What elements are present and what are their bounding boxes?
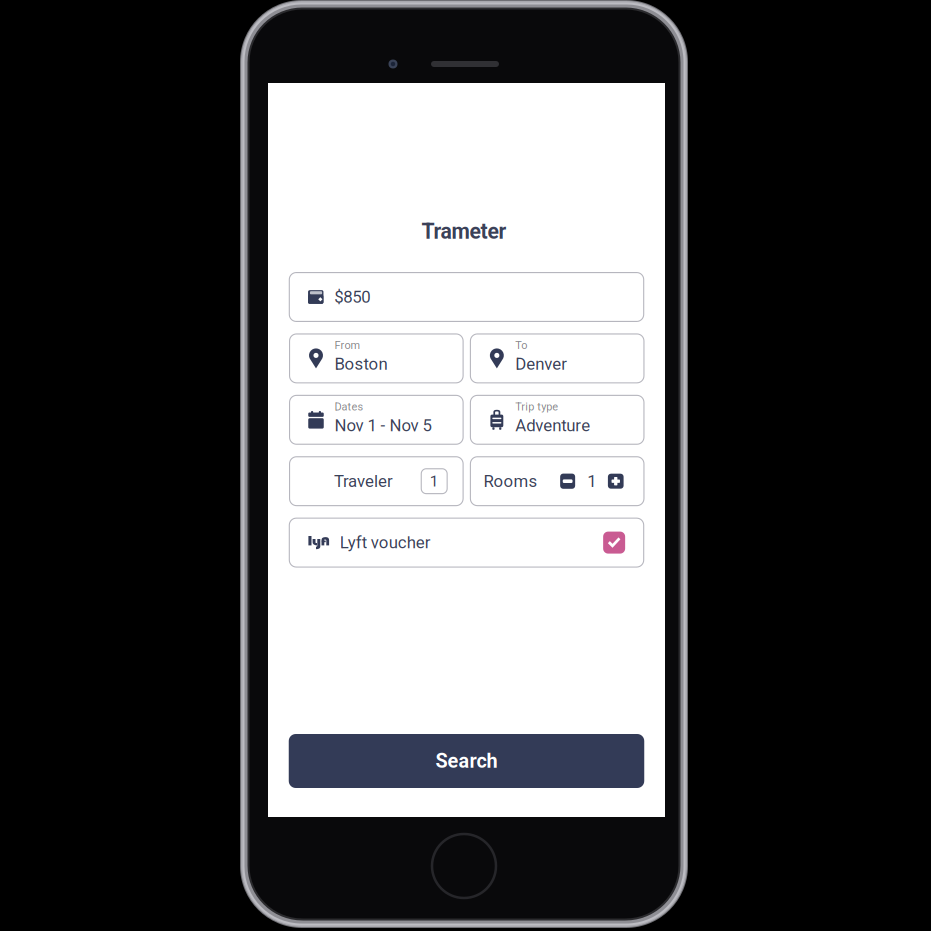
staticText: Denver	[515, 354, 567, 374]
staticText: Boston	[334, 354, 387, 374]
button[interactable]: Dates	[289, 395, 464, 445]
staticText: Nov 1 - Nov 5	[334, 416, 431, 435]
staticText: Dates	[334, 400, 363, 413]
staticText: $850	[334, 287, 370, 307]
staticText: Rooms	[483, 471, 537, 491]
button[interactable]: Increase rooms	[608, 474, 624, 489]
staticText: Adventure	[515, 416, 590, 435]
staticText: To	[515, 339, 527, 352]
button[interactable]: Decrease rooms	[560, 474, 575, 489]
button[interactable]: From	[289, 333, 464, 383]
staticText: Lyft voucher	[340, 533, 431, 552]
button[interactable]: To	[470, 333, 645, 383]
staticText: Search	[435, 749, 497, 773]
staticText: Trip type	[515, 400, 558, 413]
staticText: Traveler	[334, 471, 393, 491]
staticText: 1	[587, 471, 596, 491]
staticText: From	[334, 339, 360, 352]
staticText: Trameter	[421, 219, 506, 244]
button[interactable]: Lyft voucher	[289, 518, 644, 568]
button[interactable]: Traveler count	[421, 468, 448, 494]
button[interactable]: Search	[289, 734, 644, 788]
button[interactable]: $850	[289, 272, 644, 322]
button[interactable]: Trip type	[470, 395, 645, 445]
staticText: 1	[430, 472, 439, 490]
